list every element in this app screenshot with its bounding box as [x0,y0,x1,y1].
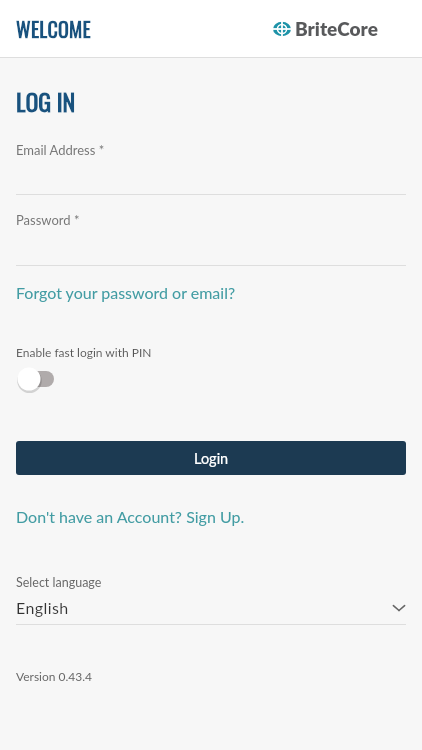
staticText: Enable fast login with PIN [16,345,152,359]
staticText: Password * [16,212,80,228]
staticText: Email Address * [16,142,105,158]
staticText: English [16,598,69,617]
staticText: BriteCore [295,17,378,40]
button[interactable] [16,366,60,392]
button[interactable]: Don't have an Account? Sign Up. [16,507,245,526]
button[interactable]: Forgot your password or email? [16,283,236,302]
staticText: Login [194,450,229,467]
staticText: WELCOME [16,14,92,44]
staticText: Version 0.43.4 [16,669,93,683]
button[interactable]: English [16,598,406,617]
button[interactable]: Login [16,441,406,475]
staticText: Select language [16,575,102,590]
staticText: LOG IN [16,83,76,119]
